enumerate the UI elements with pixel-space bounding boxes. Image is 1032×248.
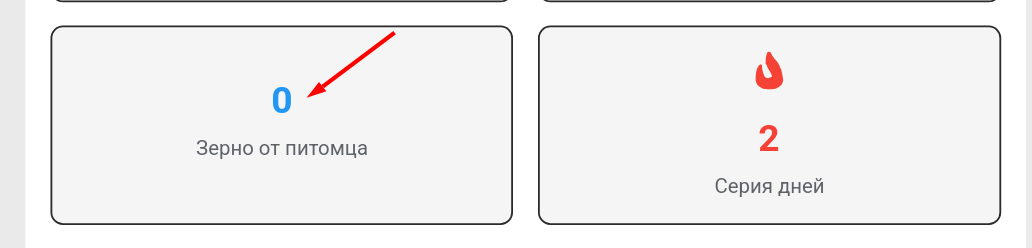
button[interactable]: Streak flame — [538, 25, 1002, 226]
staticText: Серия дней — [714, 174, 825, 198]
button[interactable] — [538, 0, 1002, 4]
staticText: 2 — [758, 116, 780, 160]
staticText: 0 — [271, 78, 293, 122]
staticText: Зерно от питомца — [196, 136, 368, 160]
button[interactable]: 0 — [50, 25, 514, 226]
button[interactable] — [50, 0, 514, 4]
other: Streak flame — [756, 52, 784, 89]
